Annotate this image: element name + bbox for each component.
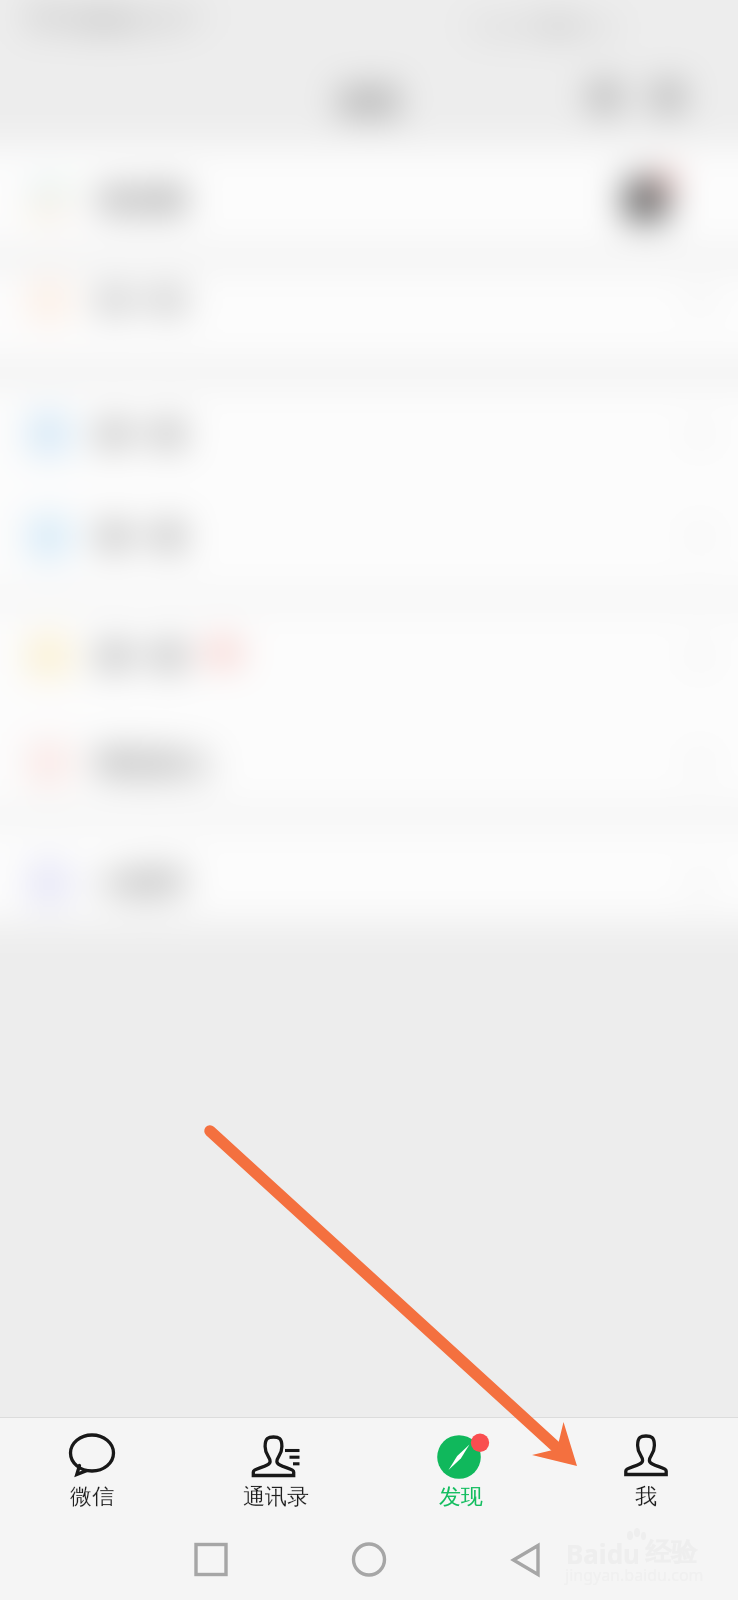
staticText: 小程序 xyxy=(98,865,185,902)
staticText: 通讯录 xyxy=(243,1483,309,1511)
button[interactable]: 摇一摇 xyxy=(0,385,738,483)
staticText: 附近的人 xyxy=(98,745,214,782)
button[interactable]: Back xyxy=(480,1522,570,1600)
staticText: Baidu xyxy=(566,1536,640,1571)
staticText: 经验 xyxy=(645,1536,697,1569)
button[interactable]: Recents xyxy=(166,1522,256,1600)
button[interactable]: 通讯录 xyxy=(184,1417,368,1522)
button[interactable]: 我 xyxy=(553,1417,738,1522)
button[interactable]: 小程序 xyxy=(0,834,738,932)
staticText: 中国移动 ⓜ ᴹ xyxy=(58,4,204,34)
button[interactable]: 朋友圈 xyxy=(0,146,738,254)
button[interactable]: 搜一搜 xyxy=(0,607,738,705)
staticText: 朋友圈 xyxy=(98,182,185,219)
button[interactable]: 扫一扫 xyxy=(0,252,738,350)
staticText: 发现 xyxy=(439,1483,483,1511)
staticText: 微信 xyxy=(70,1483,114,1511)
button[interactable]: 附近的人 xyxy=(0,714,738,812)
button[interactable]: Home xyxy=(324,1522,414,1600)
staticText: 我 xyxy=(635,1483,657,1511)
button[interactable]: 看一看 xyxy=(0,488,738,586)
button[interactable]: 微信 xyxy=(0,1417,184,1522)
staticText: 发现 xyxy=(338,83,398,121)
button[interactable]: 发现 xyxy=(368,1417,553,1522)
